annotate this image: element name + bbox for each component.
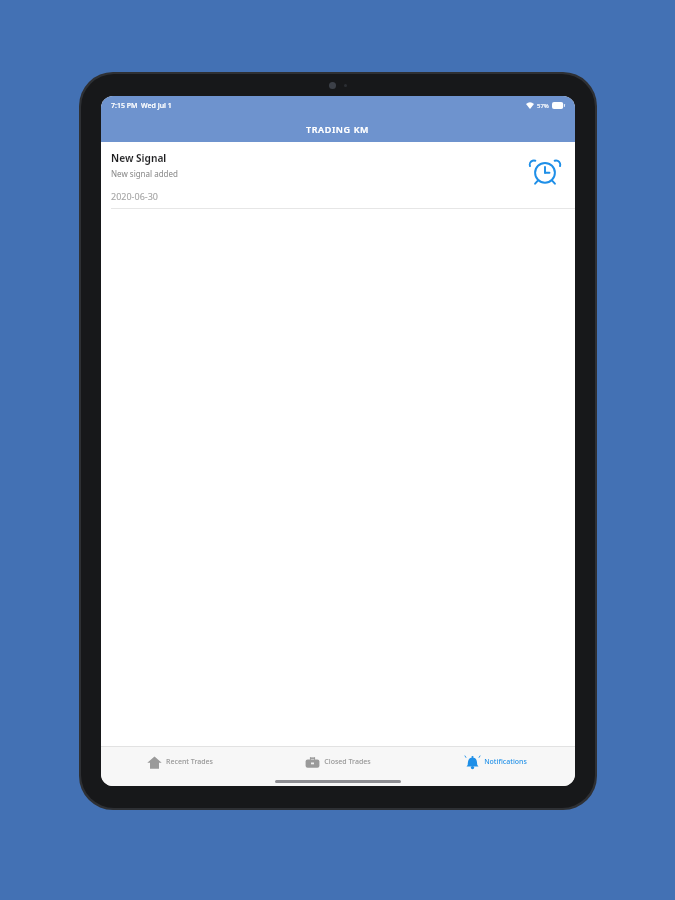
staticText: Notifications [484,757,527,767]
staticText: 7:15 PM Wed Jul 1 [111,101,172,111]
staticText: New Signal [111,151,167,165]
staticText: 2020-06-30 [111,190,158,202]
button[interactable]: Closed Trades [259,747,417,777]
staticText: New signal added [111,168,178,179]
button[interactable]: New Signal [101,142,575,209]
button[interactable]: Recent Trades [101,747,259,777]
staticText: Closed Trades [324,757,371,767]
staticText: 57% [537,102,549,110]
staticText: TRADING KM [306,123,370,135]
button[interactable]: Alarm [525,151,565,191]
button[interactable]: Notifications [417,747,575,777]
staticText: Recent Trades [166,757,213,767]
